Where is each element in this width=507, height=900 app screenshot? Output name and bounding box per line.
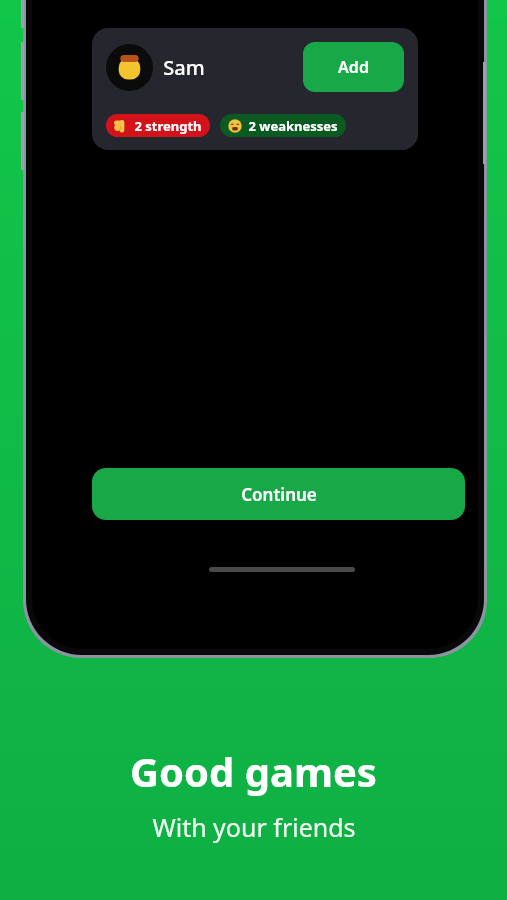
button[interactable]: Add [303, 42, 404, 92]
button[interactable]: 2 strength [114, 114, 202, 137]
button[interactable]: Continue [92, 468, 465, 520]
staticText: Continue [241, 483, 317, 506]
staticText: Good games [130, 744, 377, 798]
staticText: Add [338, 56, 369, 78]
button[interactable]: 2 weaknesses [228, 114, 338, 137]
staticText: Sam [163, 54, 205, 81]
staticText: 2 weaknesses [248, 117, 338, 135]
button[interactable]: Sam [92, 28, 418, 150]
staticText: With your friends [152, 810, 356, 844]
staticText: 2 strength [134, 117, 202, 135]
